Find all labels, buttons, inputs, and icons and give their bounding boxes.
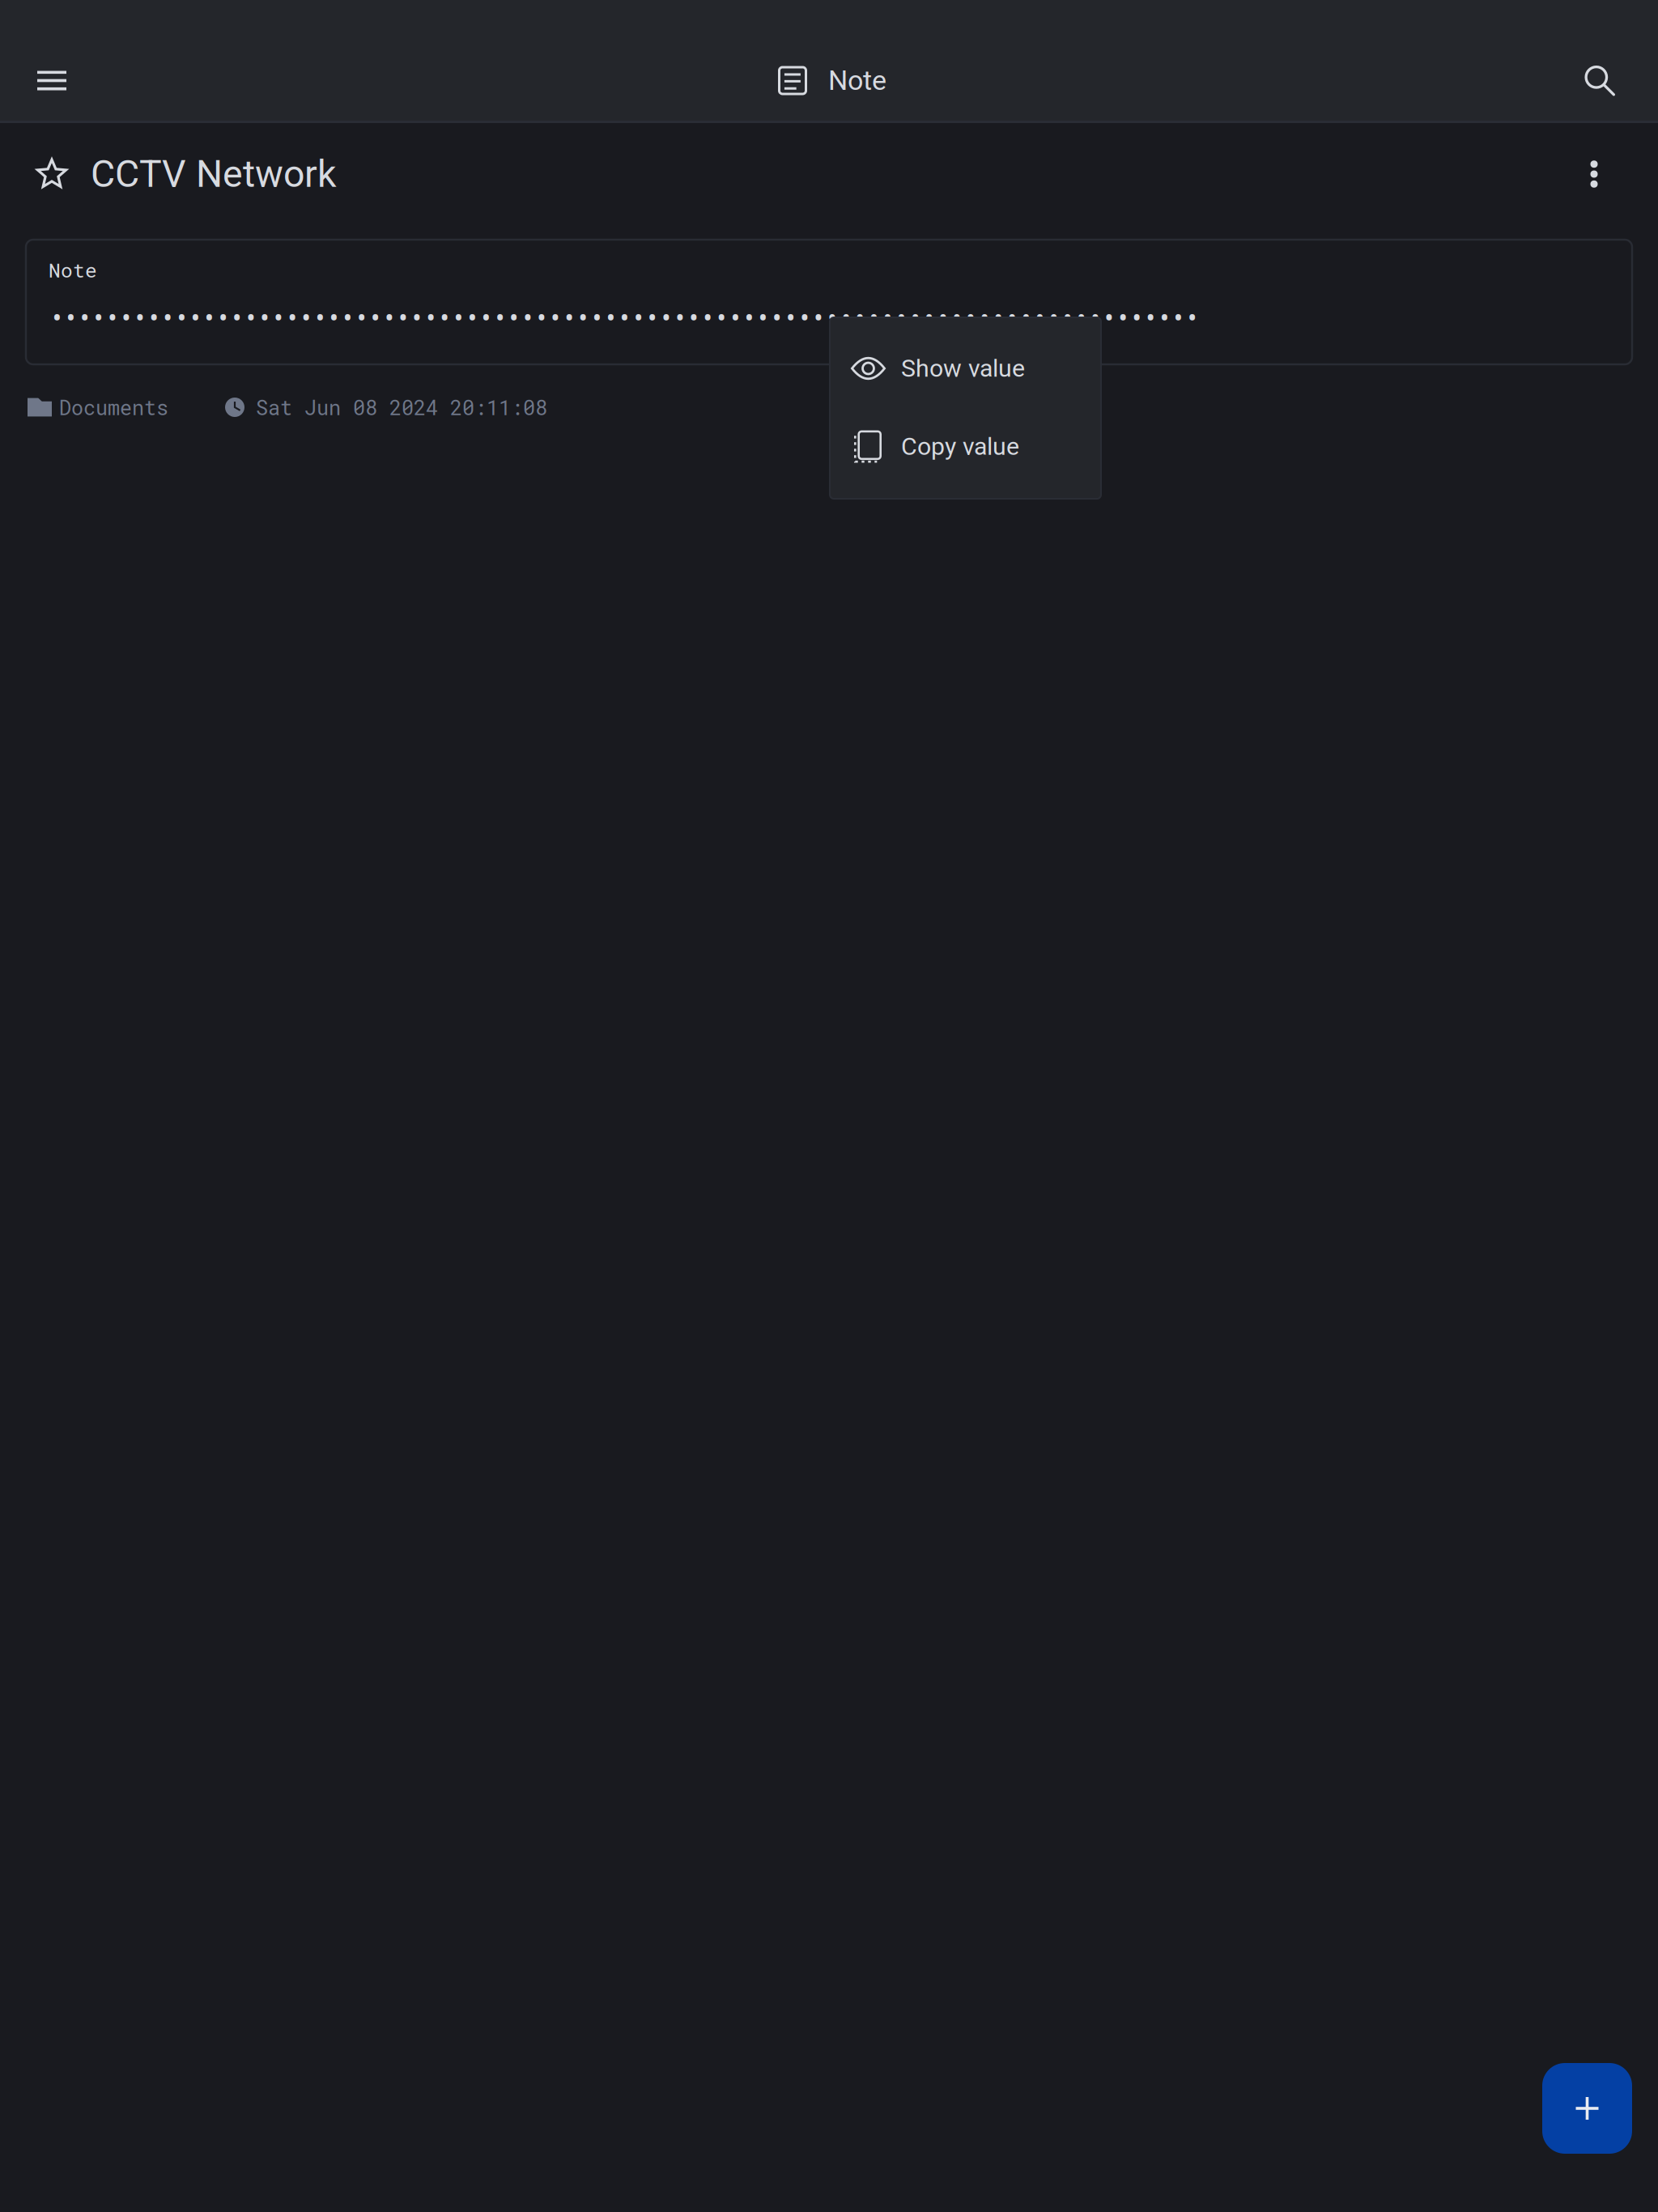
staticText: Note <box>828 64 886 97</box>
button[interactable]: Copy value <box>830 407 1101 486</box>
staticText: Note <box>49 257 97 283</box>
staticText: CCTV Network <box>91 152 337 196</box>
staticText: Sat Jun 08 2024 20:11:08 <box>256 394 547 421</box>
button[interactable]: More options <box>1570 137 1618 211</box>
staticText: Documents <box>59 394 168 421</box>
staticText: Show value <box>901 354 1025 383</box>
staticText: Copy value <box>901 432 1019 461</box>
button[interactable]: Favourite <box>28 137 76 211</box>
button[interactable]: Menu <box>23 40 81 121</box>
staticText: ••••••••••••••••••••••••••••••••••••••••… <box>49 298 1201 335</box>
button[interactable]: Show value <box>830 330 1101 407</box>
button[interactable]: Search <box>1571 40 1629 121</box>
button[interactable]: Note <box>26 240 1632 364</box>
button[interactable]: Add <box>1542 2063 1632 2154</box>
